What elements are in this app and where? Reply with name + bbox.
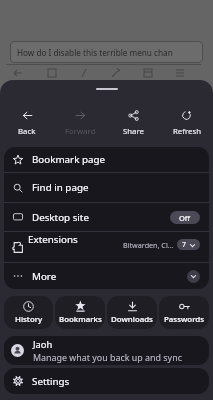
button[interactable]: Downloads [107, 296, 157, 329]
staticText: History [15, 314, 43, 325]
button[interactable]: Back [0, 107, 54, 140]
staticText: Manage what you back up and sync [33, 351, 182, 363]
staticText: Bitwarden, Cl... [123, 240, 174, 250]
button[interactable]: Desktop site [4, 203, 209, 231]
button[interactable]: Jaoh [4, 336, 209, 365]
button[interactable]: Extensions [4, 232, 209, 262]
staticText: Refresh [173, 126, 201, 137]
button[interactable]: History [4, 296, 53, 329]
staticText: Off [179, 213, 191, 223]
staticText: Settings [32, 375, 70, 388]
staticText: Desktop site [32, 211, 170, 224]
button[interactable]: More [4, 263, 209, 289]
staticText: Back [18, 126, 36, 137]
staticText: Downloads [111, 314, 153, 325]
staticText: Bookmark page [32, 153, 200, 166]
staticText: Find in page [32, 181, 200, 194]
staticText: Jaoh [33, 338, 53, 351]
button[interactable]: Passwords [159, 296, 209, 329]
button[interactable]: Settings [4, 368, 209, 394]
staticText: 7 [182, 240, 187, 250]
staticText: Share [123, 126, 144, 137]
button[interactable]: Bookmarks [55, 296, 105, 329]
button[interactable]: Share [107, 107, 160, 140]
staticText: More [32, 270, 187, 283]
button[interactable]: Forward [54, 107, 107, 140]
staticText: Passwords [164, 314, 205, 325]
button[interactable]: Refresh [160, 107, 213, 140]
button[interactable]: Bookmark page [4, 147, 209, 172]
staticText: Extensions [28, 233, 78, 246]
staticText: How do I disable this terrible menu chan [17, 47, 173, 58]
button[interactable]: Off [170, 211, 200, 224]
button[interactable]: Find in page [4, 173, 209, 202]
staticText: Bookmarks [59, 314, 102, 325]
staticText: Forward [65, 126, 96, 137]
